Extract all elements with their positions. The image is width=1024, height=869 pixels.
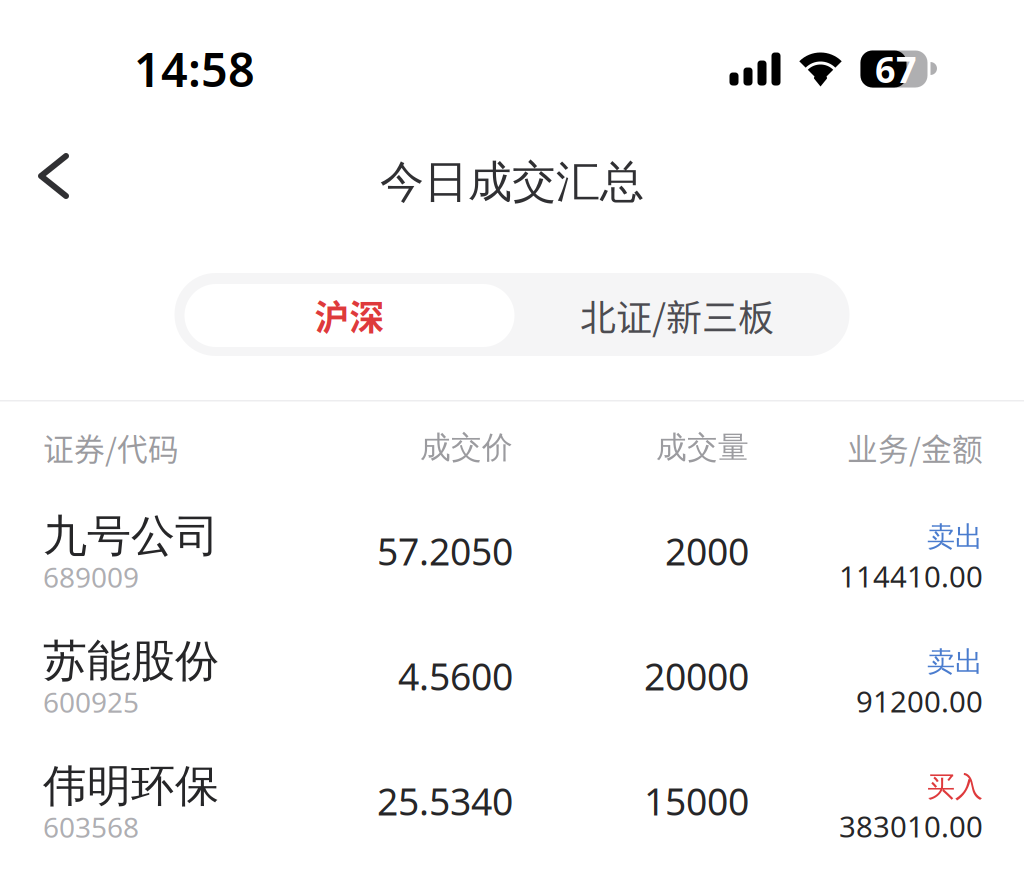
staticText: 91200.00 xyxy=(856,681,983,720)
staticText: 北证/新三板 xyxy=(580,289,774,341)
staticText: 603568 xyxy=(43,808,139,846)
staticText: 证券/代码 xyxy=(43,425,179,470)
staticText: 2000 xyxy=(665,526,749,576)
staticText: 卖出 xyxy=(927,520,983,554)
staticText: 57.2050 xyxy=(377,526,513,576)
button[interactable]: 伟明环保 xyxy=(0,743,1024,868)
staticText: 15000 xyxy=(644,776,749,826)
staticText: 卖出 xyxy=(927,645,983,679)
button[interactable]: 沪深 xyxy=(184,284,514,347)
staticText: 成交价 xyxy=(420,429,513,466)
staticText: 114410.00 xyxy=(839,556,983,595)
staticText: 今日成交汇总 xyxy=(380,155,644,209)
staticText: 苏能股份 xyxy=(43,634,219,688)
staticText: 689009 xyxy=(43,558,139,596)
staticText: 4.5600 xyxy=(398,651,513,701)
button[interactable]: 苏能股份 xyxy=(0,618,1024,743)
staticText: 600925 xyxy=(43,683,139,721)
staticText: 20000 xyxy=(644,651,749,701)
staticText: 买入 xyxy=(927,770,983,804)
button[interactable]: 九号公司 xyxy=(0,493,1024,618)
staticText: 383010.00 xyxy=(839,806,983,845)
staticText: 成交量 xyxy=(656,429,749,466)
button[interactable]: Back xyxy=(0,138,96,214)
staticText: 沪深 xyxy=(314,290,384,341)
staticText: 25.5340 xyxy=(377,776,513,826)
button[interactable]: 北证/新三板 xyxy=(514,284,839,346)
staticText: 九号公司 xyxy=(43,509,219,563)
staticText: 14:58 xyxy=(134,38,255,100)
staticText: 业务/金额 xyxy=(847,425,983,470)
staticText: 伟明环保 xyxy=(43,759,219,813)
staticText: 67 xyxy=(875,45,917,93)
